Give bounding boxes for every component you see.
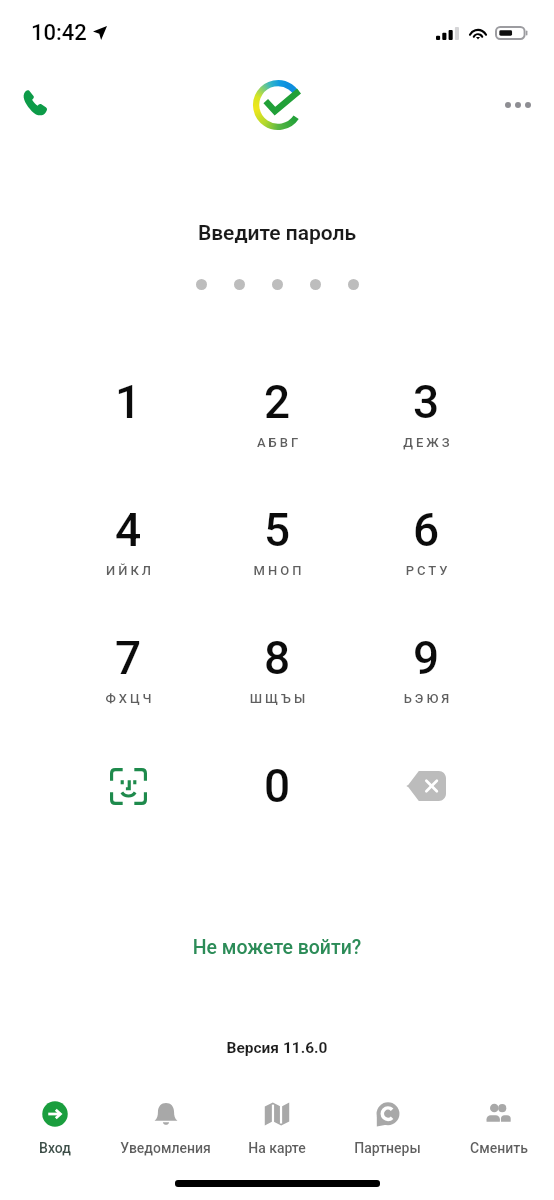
button[interactable]: На карте bbox=[221, 1101, 332, 1156]
staticText: 8 bbox=[217, 631, 337, 685]
button[interactable]: Call bbox=[10, 81, 58, 129]
staticText: 4 bbox=[68, 503, 188, 557]
button[interactable]: 2 bbox=[217, 359, 337, 455]
button[interactable]: 1 bbox=[68, 359, 188, 455]
staticText: Вход bbox=[39, 1140, 71, 1156]
button[interactable]: Вход bbox=[0, 1101, 110, 1156]
button[interactable]: 3 bbox=[366, 359, 486, 455]
staticText: 3 bbox=[366, 375, 486, 429]
button[interactable]: 5 bbox=[217, 487, 337, 583]
button[interactable]: 9 bbox=[366, 615, 486, 711]
staticText: Партнеры bbox=[354, 1140, 421, 1156]
staticText: ИЙКЛ bbox=[70, 563, 190, 578]
staticText: ДЕЖЗ bbox=[368, 435, 488, 450]
button[interactable]: Партнеры bbox=[332, 1101, 443, 1156]
button[interactable]: 8 bbox=[217, 615, 337, 711]
button[interactable]: Не можете войти? bbox=[0, 936, 554, 959]
staticText: 5 bbox=[217, 503, 337, 557]
staticText: АБВГ bbox=[219, 435, 339, 450]
staticText: Уведомления bbox=[120, 1140, 211, 1156]
staticText: На карте bbox=[248, 1140, 306, 1156]
staticText: РСТУ bbox=[368, 563, 488, 578]
button[interactable]: 4 bbox=[68, 487, 188, 583]
staticText: ФХЦЧ bbox=[70, 691, 190, 706]
staticText: МНОП bbox=[219, 563, 339, 578]
button[interactable]: 0 bbox=[217, 743, 337, 839]
button[interactable]: Backspace bbox=[366, 751, 486, 821]
staticText: 10:42 bbox=[31, 20, 87, 46]
staticText: 9 bbox=[366, 631, 486, 685]
staticText: Введите пароль bbox=[0, 221, 554, 246]
staticText: 0 bbox=[217, 759, 337, 813]
staticText: Версия 11.6.0 bbox=[0, 1039, 554, 1057]
staticText: 6 bbox=[366, 503, 486, 557]
staticText: 2 bbox=[217, 375, 337, 429]
staticText: ЬЭЮЯ bbox=[368, 691, 488, 706]
button[interactable]: Face ID bbox=[68, 751, 188, 821]
button[interactable]: Сменить bbox=[443, 1101, 554, 1156]
staticText: 1 bbox=[68, 375, 188, 429]
staticText: ШЩЪЫ bbox=[219, 691, 339, 706]
button[interactable]: 7 bbox=[68, 615, 188, 711]
staticText: 7 bbox=[68, 631, 188, 685]
button[interactable]: Уведомления bbox=[110, 1101, 221, 1156]
button[interactable]: 6 bbox=[366, 487, 486, 583]
staticText: Сменить bbox=[470, 1140, 528, 1156]
button[interactable]: More options bbox=[494, 81, 542, 129]
